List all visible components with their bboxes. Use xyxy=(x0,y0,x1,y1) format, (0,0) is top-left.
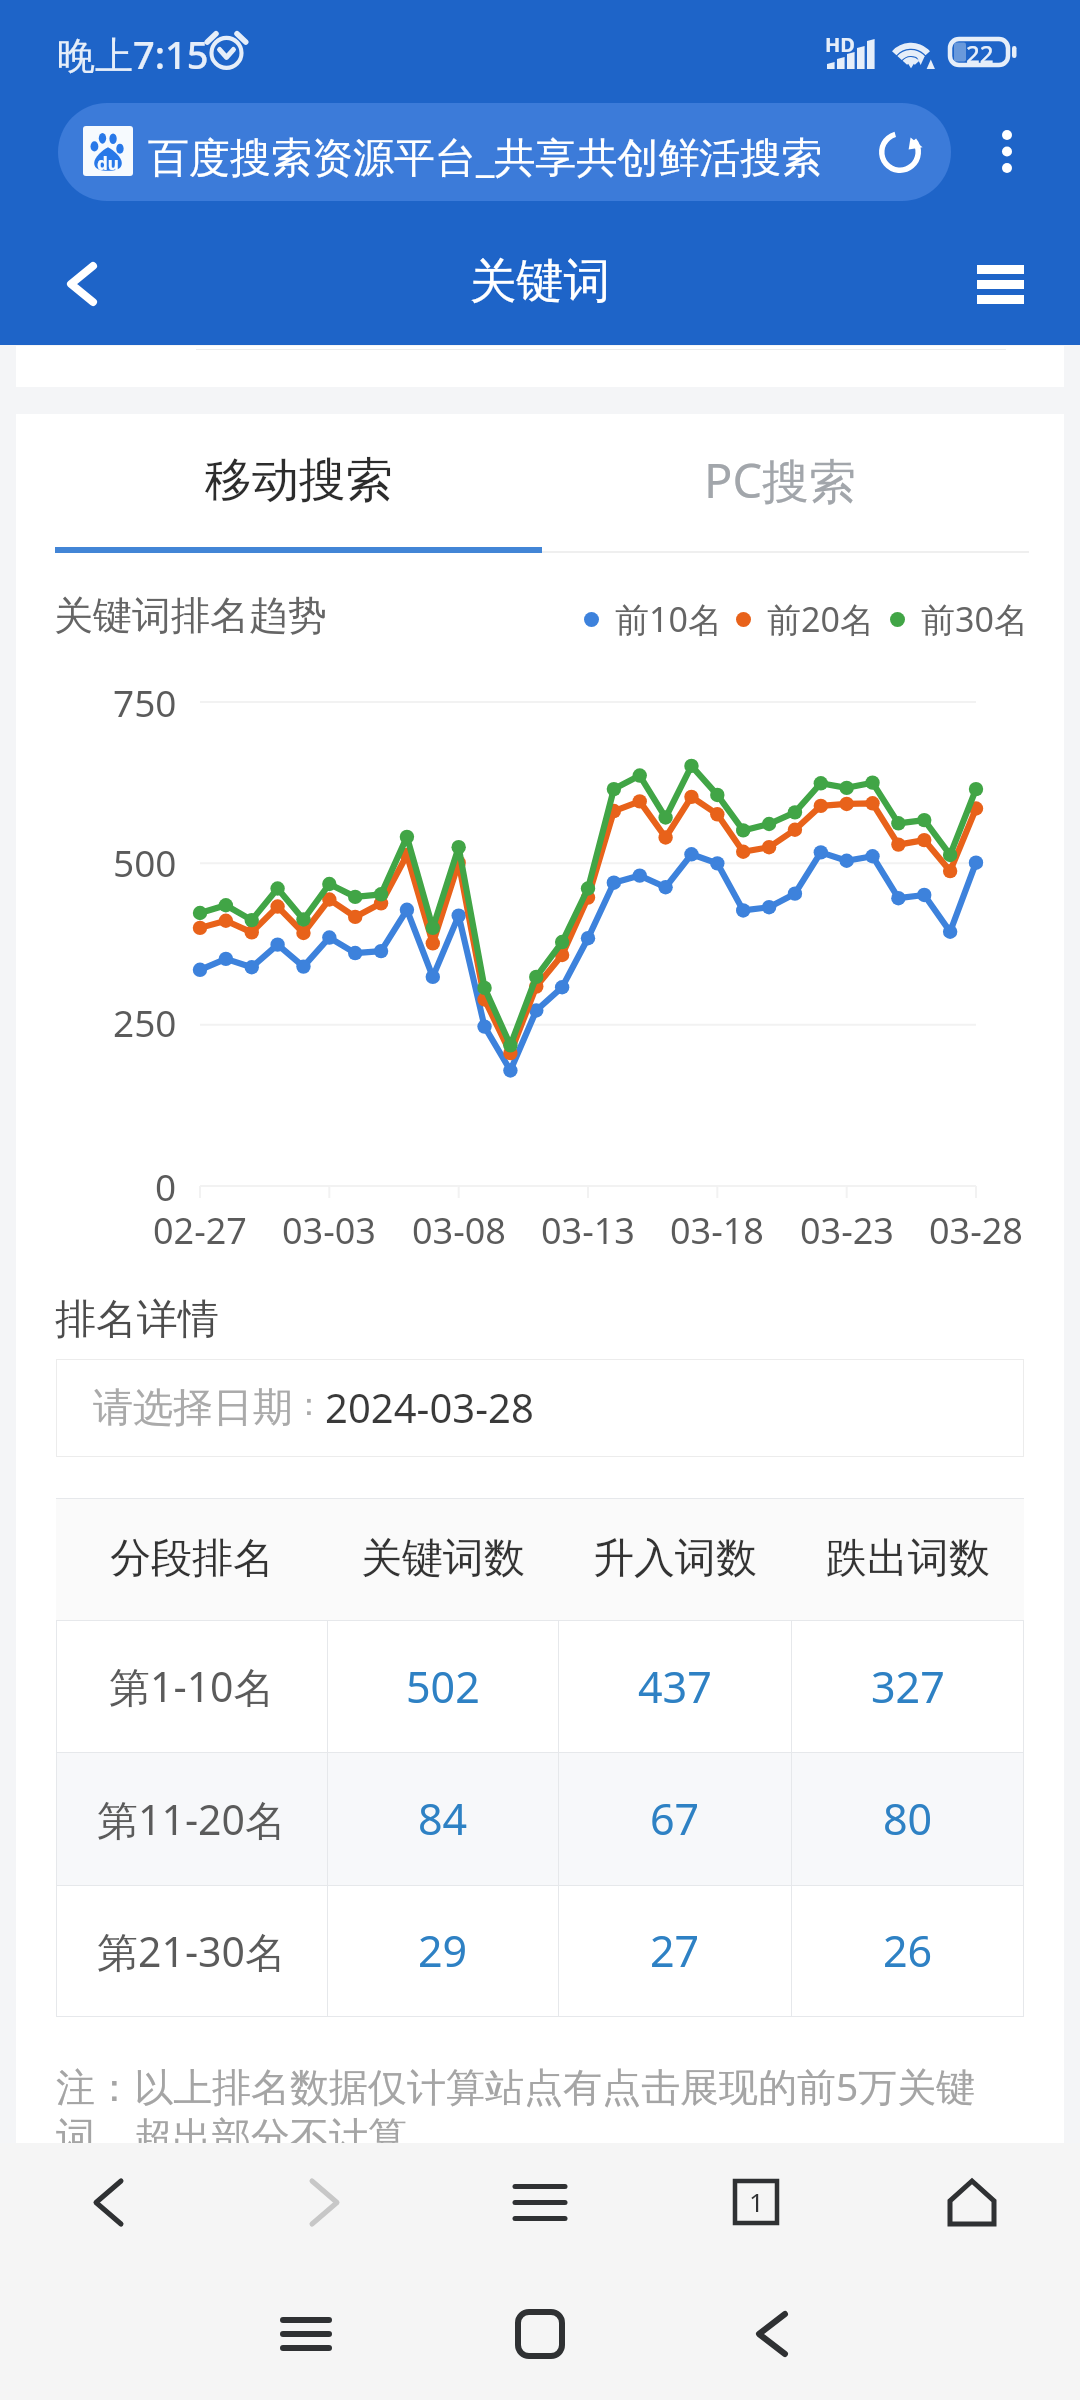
staticText: 晚上7:15 xyxy=(57,28,209,80)
staticText: 22 xyxy=(966,37,994,67)
staticText: 前30名 xyxy=(921,596,1028,642)
staticText: 前20名 xyxy=(767,596,874,642)
staticText: 分段排名 xyxy=(110,1533,274,1585)
staticText: 请选择日期 xyxy=(93,1382,293,1432)
staticText: 750 xyxy=(113,677,177,727)
staticText: 26 xyxy=(883,1921,933,1980)
button[interactable]: 请选择日期 xyxy=(56,1359,1024,1457)
staticText: 03-08 xyxy=(412,1206,506,1255)
staticText: 升入词数 xyxy=(593,1533,757,1585)
staticText: 关键词排名趋势 xyxy=(54,591,327,640)
button[interactable]: Back xyxy=(36,238,128,330)
staticText: 03-03 xyxy=(282,1206,376,1255)
button[interactable]: Refresh xyxy=(870,122,930,182)
button[interactable]: 移动搜索 xyxy=(55,414,542,544)
button[interactable]: Forward xyxy=(216,2143,432,2257)
staticText: 03-13 xyxy=(541,1206,635,1255)
staticText: 前10名 xyxy=(615,596,722,642)
button[interactable]: Recents xyxy=(236,2257,376,2400)
staticText: 关键词数 xyxy=(361,1533,525,1585)
staticText: 250 xyxy=(113,997,177,1047)
staticText: 67 xyxy=(650,1789,700,1848)
staticText: 1 xyxy=(749,2184,764,2219)
staticText: 03-18 xyxy=(670,1206,764,1255)
button[interactable]: Menu xyxy=(432,2143,648,2257)
staticText: 03-23 xyxy=(800,1206,894,1255)
staticText: 0 xyxy=(155,1161,177,1211)
staticText: 移动搜索 xyxy=(205,451,393,510)
staticText: 排名详情 xyxy=(55,1294,219,1346)
staticText: 第1-10名 xyxy=(109,1658,275,1714)
staticText: 2024-03-28 xyxy=(325,1380,534,1434)
staticText: du xyxy=(97,152,119,175)
button[interactable]: Home xyxy=(470,2257,610,2400)
button[interactable]: Home xyxy=(864,2143,1080,2257)
staticText: 注：以上排名数据仅计算站点有点击展现的前5万关键词，超出部分不计算 xyxy=(56,2059,986,2161)
staticText: ： xyxy=(293,1384,325,1424)
button[interactable]: PC搜索 xyxy=(537,414,1024,544)
staticText: 84 xyxy=(418,1789,468,1848)
staticText: 500 xyxy=(113,837,177,887)
button[interactable]: Back xyxy=(0,2143,216,2257)
button[interactable]: Back xyxy=(702,2257,842,2400)
staticText: 关键词 xyxy=(0,252,1080,311)
button[interactable]: More options xyxy=(974,118,1040,184)
staticText: 437 xyxy=(638,1657,712,1716)
staticText: 百度搜索资源平台_共享共创鲜活搜索 xyxy=(148,128,823,184)
staticText: 02-27 xyxy=(153,1206,247,1255)
staticText: 327 xyxy=(871,1657,945,1716)
staticText: 第21-30名 xyxy=(97,1923,287,1979)
staticText: 跌出词数 xyxy=(826,1533,990,1585)
button[interactable]: du xyxy=(58,103,951,201)
staticText: 第11-20名 xyxy=(97,1791,287,1847)
staticText: 80 xyxy=(883,1789,933,1848)
staticText: 03-28 xyxy=(929,1206,1023,1255)
staticText: 27 xyxy=(650,1921,700,1980)
staticText: PC搜索 xyxy=(704,448,857,512)
staticText: 29 xyxy=(418,1921,468,1980)
staticText: 502 xyxy=(406,1657,480,1716)
button[interactable]: Tabs xyxy=(648,2143,864,2257)
button[interactable]: Menu xyxy=(954,238,1046,330)
staticText: HD xyxy=(825,31,855,58)
